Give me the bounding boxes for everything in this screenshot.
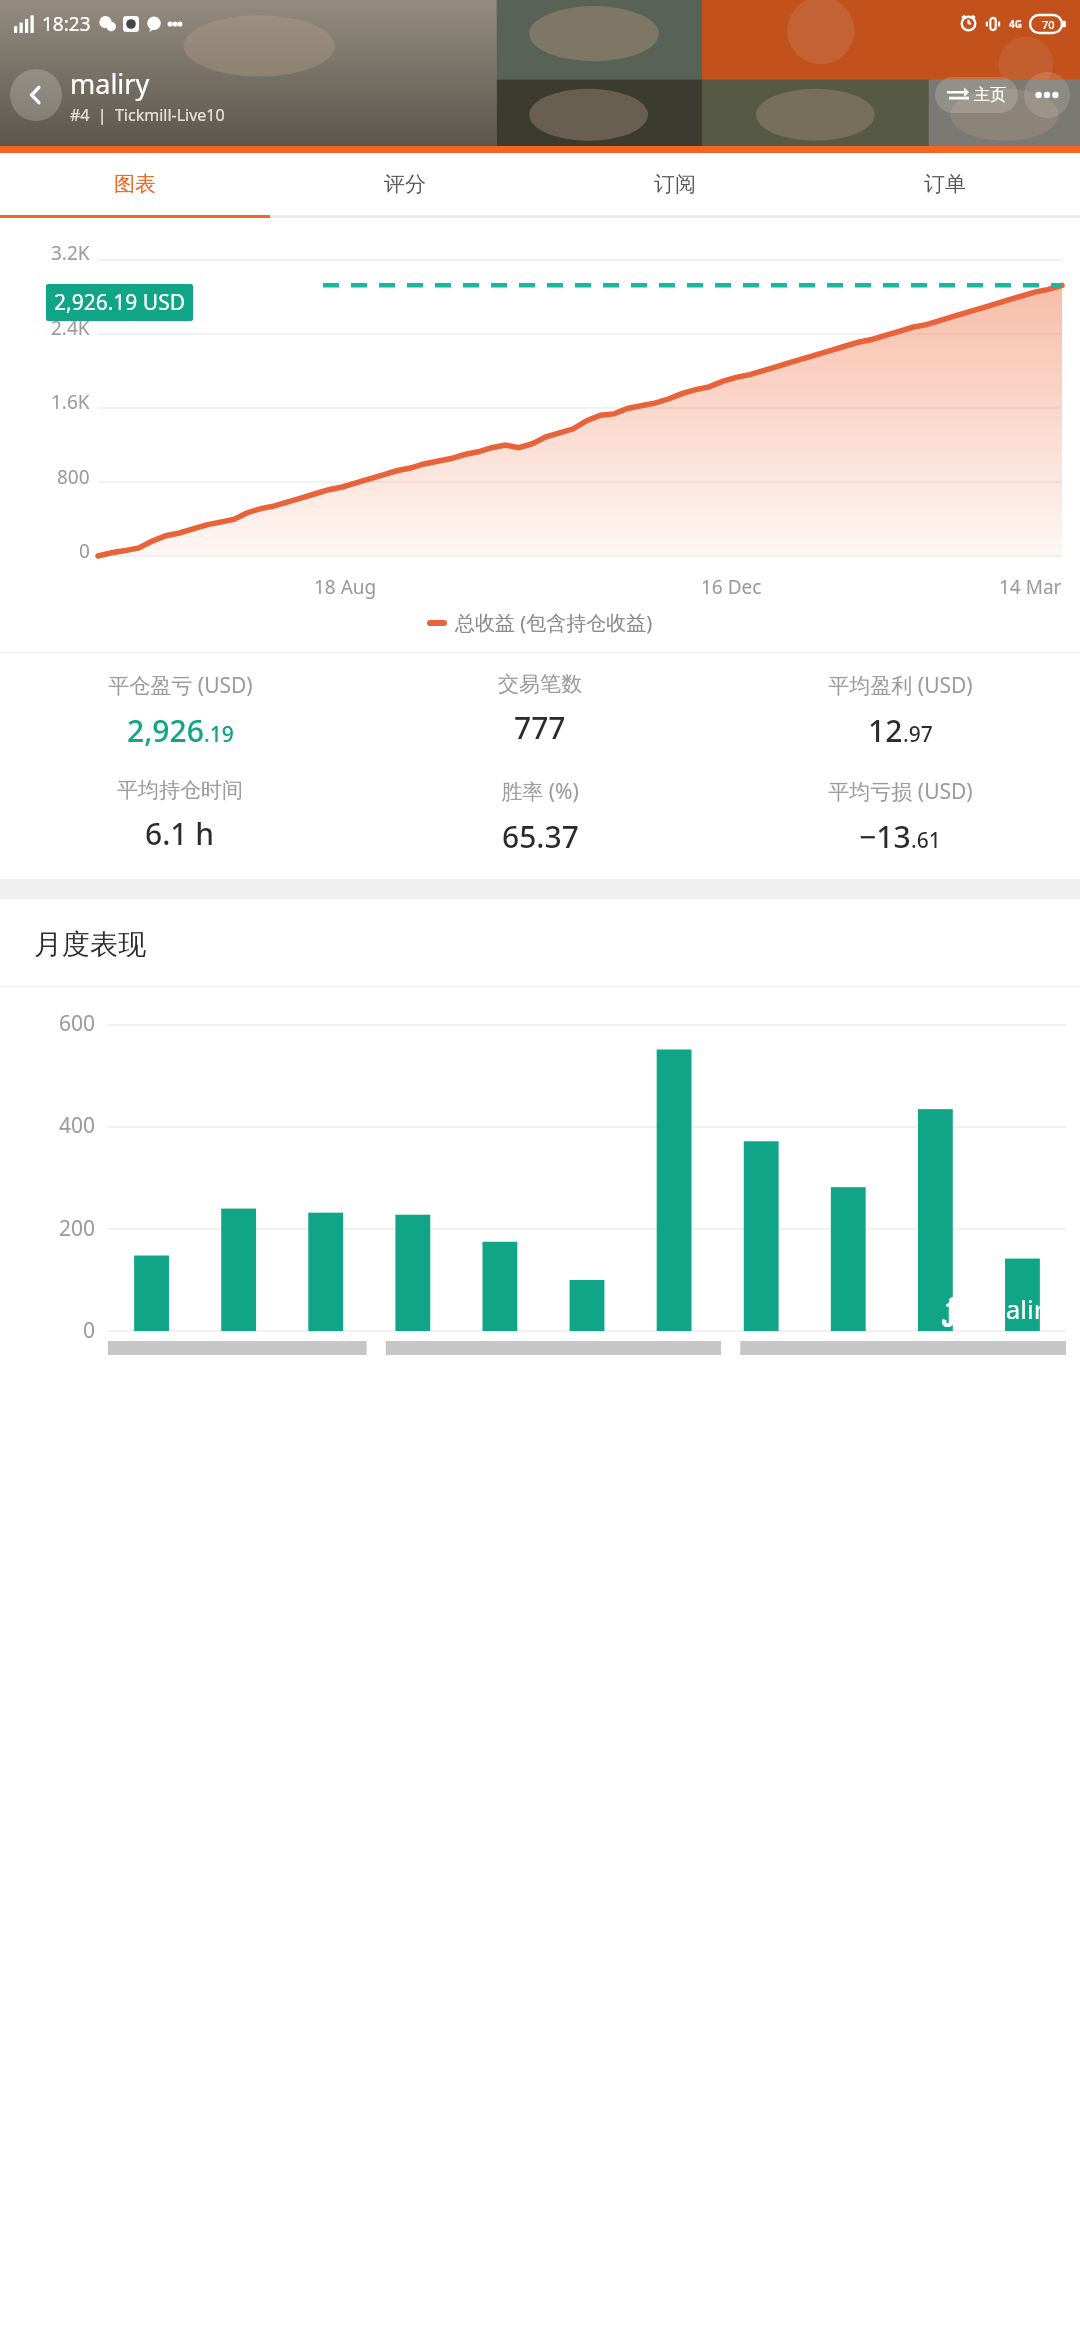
staticText: 200: [59, 1214, 96, 1243]
button[interactable]: 交易笔数: [360, 671, 720, 748]
staticText: 2,926.19 USD: [54, 288, 185, 317]
staticText: ƒ: [942, 1288, 958, 1329]
staticText: −13: [859, 816, 911, 857]
staticText: 0: [79, 538, 90, 564]
staticText: 2.4K: [51, 315, 90, 341]
button[interactable]: 平均亏损 (USD): [720, 777, 1080, 857]
staticText: 800: [57, 464, 90, 490]
staticText: 胜率 (%): [501, 777, 579, 806]
staticText: 平均持仓时间: [117, 777, 243, 803]
button[interactable]: 胜率 (%): [360, 777, 720, 857]
staticText: 总收益 (包含持仓收益): [455, 609, 653, 636]
staticText: 2,926: [127, 710, 204, 751]
staticText: #4 | Tickmill-Live10: [70, 104, 225, 126]
staticText: maliry: [70, 65, 150, 102]
staticText: 订阅: [654, 171, 696, 197]
button[interactable]: 主页: [935, 77, 1018, 113]
staticText: 4G: [1009, 17, 1022, 31]
staticText: 70: [1042, 17, 1055, 32]
staticText: 交易笔数: [498, 671, 582, 697]
button[interactable]: 评分: [270, 153, 540, 215]
button[interactable]: 图表: [0, 153, 270, 215]
staticText: 14 Mar: [999, 574, 1062, 600]
staticText: 777: [514, 707, 566, 748]
staticText: 0: [83, 1316, 96, 1345]
staticText: 平均盈利 (USD): [828, 671, 973, 700]
button[interactable]: 平仓盈亏 (USD): [0, 671, 360, 751]
staticText: 16 Dec: [701, 574, 762, 600]
button[interactable]: 平均持仓时间: [0, 777, 360, 854]
staticText: 平均亏损 (USD): [828, 777, 973, 806]
staticText: .97: [903, 720, 933, 749]
staticText: @maliry: [958, 1291, 1058, 1326]
staticText: 6.1 h: [145, 813, 215, 854]
staticText: 12: [868, 710, 903, 751]
staticText: 主页: [974, 85, 1006, 105]
staticText: 3.2K: [51, 240, 90, 266]
staticText: .19: [204, 720, 234, 749]
button[interactable]: 订阅: [540, 153, 810, 215]
staticText: 600: [59, 1009, 96, 1038]
staticText: .61: [911, 826, 941, 855]
staticText: 评分: [384, 171, 426, 197]
staticText: 18:23: [42, 11, 91, 37]
button[interactable]: 平均盈利 (USD): [720, 671, 1080, 751]
staticText: 65.37: [502, 816, 579, 857]
staticText: 18 Aug: [314, 574, 377, 600]
staticText: 图表: [114, 171, 156, 197]
staticText: 月度表现: [34, 927, 146, 962]
staticText: 平仓盈亏 (USD): [108, 671, 253, 700]
button[interactable]: More options: [1024, 72, 1070, 118]
button[interactable]: Back: [10, 69, 62, 121]
button[interactable]: 订单: [810, 153, 1080, 215]
staticText: 400: [59, 1111, 96, 1140]
staticText: 1.6K: [51, 389, 90, 415]
staticText: 订单: [924, 171, 966, 197]
